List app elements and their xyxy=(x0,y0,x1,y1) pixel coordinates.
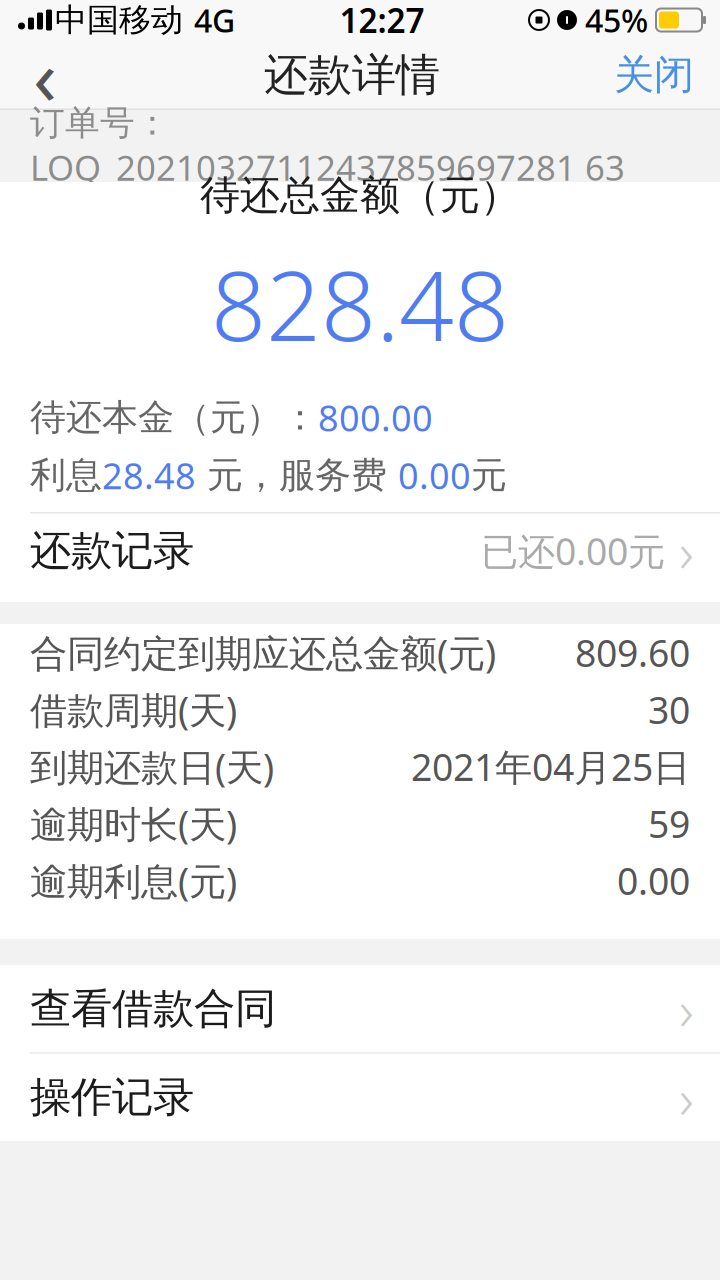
staticText: 逾期时长(天) xyxy=(30,799,237,848)
staticText: 4G xyxy=(186,0,235,41)
staticText: › xyxy=(679,972,694,1046)
staticText: 元，服务费 xyxy=(196,453,398,497)
staticText: 还款详情 xyxy=(264,48,440,102)
staticText: 利息 xyxy=(30,453,102,497)
staticText: 中国移动 xyxy=(55,0,183,40)
button[interactable]: 返回 xyxy=(0,40,90,110)
staticText: 12:27 xyxy=(339,0,424,42)
staticText: 到期还款日(天) xyxy=(30,742,274,791)
staticText: 逾期利息(元) xyxy=(30,856,237,905)
staticText: ‹ xyxy=(33,24,57,126)
staticText: 已还0.00元 xyxy=(481,526,665,575)
button[interactable]: 还款记录 xyxy=(0,512,720,602)
staticText: 还款记录 xyxy=(30,525,194,576)
staticText: 关闭 xyxy=(614,50,694,99)
staticText: 2021年04月25日 xyxy=(411,742,690,791)
staticText: 828.48 xyxy=(211,240,509,368)
staticText: 809.60 xyxy=(575,628,690,677)
staticText: 借款周期(天) xyxy=(30,685,237,734)
staticText: 59 xyxy=(648,799,690,848)
staticText: 操作记录 xyxy=(30,1072,194,1123)
staticText: › xyxy=(679,513,694,588)
button[interactable]: 查看借款合同 xyxy=(0,965,720,1052)
staticText: 合同约定到期应还总金额(元) xyxy=(30,628,496,677)
staticText: 800.00 xyxy=(318,394,433,441)
staticText: 0.00 xyxy=(268,509,341,557)
staticText: 28.48 xyxy=(102,451,196,499)
button[interactable]: 关闭 xyxy=(614,50,720,99)
staticText: › xyxy=(679,1060,694,1134)
staticText: 还款手续费(元) xyxy=(30,509,268,557)
staticText: 查看借款合同 xyxy=(30,983,276,1034)
button[interactable]: 操作记录 xyxy=(0,1054,720,1141)
staticText: 订单号：LOQ_20210327112437859697281 63 xyxy=(30,102,625,190)
staticText: 30 xyxy=(648,685,690,734)
staticText: 0.00 xyxy=(617,856,690,905)
staticText: 元 xyxy=(471,453,507,497)
staticText: 待还本金（元）： xyxy=(30,395,318,440)
staticText: 0.00 xyxy=(398,451,471,499)
staticText: 45% xyxy=(585,0,648,41)
staticText: 待还总金额（元） xyxy=(200,171,520,220)
